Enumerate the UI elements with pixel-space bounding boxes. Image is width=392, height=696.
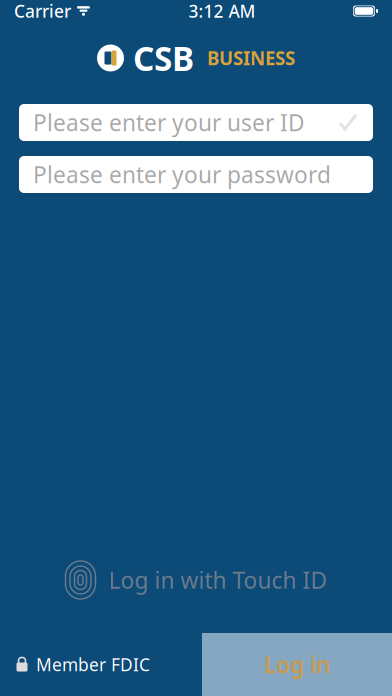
staticText: Please enter your user ID: [33, 107, 305, 137]
staticText: Please enter your password: [33, 159, 331, 189]
staticText: Log in: [264, 649, 330, 679]
staticText: BUSINESS: [207, 46, 295, 70]
staticText: 3:12 AM: [188, 0, 255, 22]
button[interactable]: Log in: [202, 633, 392, 696]
button[interactable]: Please enter your user ID: [19, 104, 373, 141]
button[interactable]: Log in with Touch ID: [52, 557, 339, 603]
staticText: Member FDIC: [36, 653, 150, 676]
button[interactable]: Please enter your password: [19, 156, 373, 193]
staticText: Log in with Touch ID: [108, 565, 327, 595]
staticText: CSB: [133, 36, 194, 80]
staticText: Carrier: [14, 0, 71, 22]
button[interactable]: Member FDIC: [0, 644, 166, 684]
